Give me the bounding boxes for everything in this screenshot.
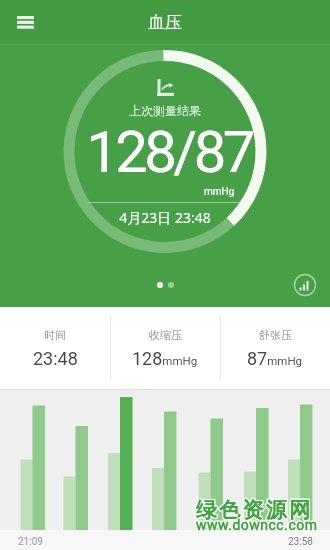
button[interactable]: 舒张压 [220,307,330,389]
staticText: 收缩压 [149,328,182,342]
staticText: www.downcc.com [196,518,318,534]
staticText: 绿色资源网 [194,498,310,524]
staticText: 绿色资源网 [194,497,310,523]
staticText: www.downcc.com [197,518,319,534]
staticText: 128/87 [4,118,330,186]
staticText: www.downcc.com [195,518,317,534]
staticText: 23:48 [33,348,78,369]
button[interactable] [8,7,42,37]
staticText: 4月23日 23:48 [0,208,330,227]
staticText: 128mmHg [132,348,198,369]
staticText: www.downcc.com [197,517,319,533]
staticText: 绿色资源网 [196,496,312,522]
staticText: www.downcc.com [195,516,317,532]
staticText: 87mmHg [247,348,303,369]
staticText: 绿色资源网 [196,498,312,524]
staticText: www.downcc.com [195,517,317,533]
button[interactable]: 时间 [0,307,110,389]
button[interactable]: 收缩压 [110,307,220,389]
staticText: www.downcc.com [197,516,319,532]
staticText: 绿色资源网 [194,496,310,522]
staticText: 23:58 [288,536,313,548]
staticText: 21:09 [18,536,43,548]
staticText: mmHg [204,186,235,198]
staticText: 绿色资源网 [195,498,311,524]
staticText: 绿色资源网 [196,497,312,523]
staticText: 舒张压 [259,328,292,342]
staticText: www.downcc.com [196,516,318,532]
button[interactable] [292,272,318,298]
staticText: www.downcc.com [196,517,318,533]
staticText: 绿色资源网 [195,497,311,523]
staticText: 时间 [44,328,66,342]
staticText: 上次测量结果 [0,103,330,118]
staticText: 绿色资源网 [195,496,311,522]
staticText: 血压 [148,12,182,33]
